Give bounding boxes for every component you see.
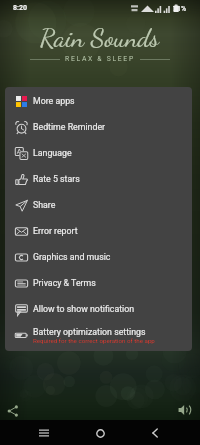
staticText: Battery optimization settings — [33, 327, 146, 337]
button[interactable]: More apps — [5, 88, 192, 114]
staticText: RELAX & SLEEP — [65, 55, 135, 63]
button[interactable]: Error report — [5, 218, 192, 244]
button[interactable]: Allow to show notification — [5, 296, 192, 322]
staticText: Privacy & Terms — [33, 278, 96, 288]
button[interactable]: Share — [5, 192, 192, 218]
staticText: Rain Sounds — [40, 22, 160, 53]
staticText: Share — [33, 200, 56, 210]
staticText: Bedtime Reminder — [33, 122, 106, 132]
button[interactable]: Share — [1, 399, 25, 423]
staticText: Language — [33, 148, 72, 158]
button[interactable]: Rate 5 stars — [5, 166, 192, 192]
staticText: Rate 5 stars — [33, 174, 80, 184]
staticText: More apps — [33, 96, 75, 106]
button[interactable]: Language — [5, 140, 192, 166]
staticText: Graphics and music — [33, 252, 111, 262]
staticText: Allow to show notification — [33, 304, 135, 314]
staticText: 71% — [173, 5, 187, 13]
staticText: Required for the correct operation of th… — [33, 337, 155, 344]
staticText: Error report — [33, 226, 78, 236]
button[interactable]: Battery optimization settings — [5, 322, 192, 348]
button[interactable]: Privacy & Terms — [5, 270, 192, 296]
button[interactable]: Back — [143, 421, 167, 445]
staticText: 8:20 — [13, 4, 28, 12]
button[interactable]: Bedtime Reminder — [5, 114, 192, 140]
button[interactable]: Recent apps — [32, 421, 56, 445]
button[interactable]: Volume — [173, 398, 197, 422]
button[interactable]: Home — [88, 421, 112, 445]
button[interactable]: Graphics and music — [5, 244, 192, 270]
